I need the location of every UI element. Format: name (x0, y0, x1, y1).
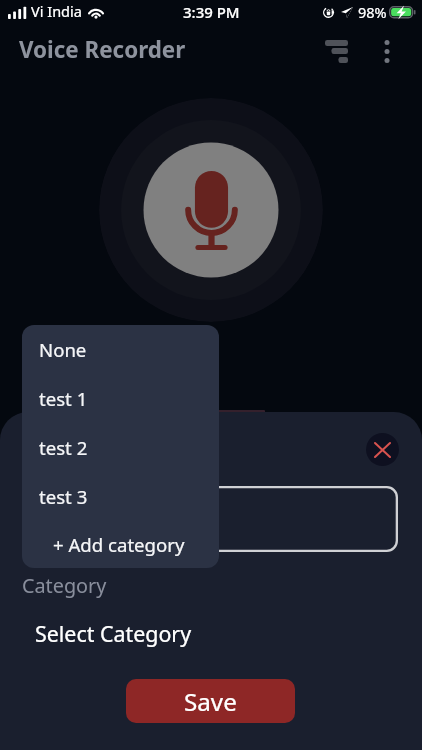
staticText: 98% (358, 2, 387, 22)
button[interactable]: Save (126, 679, 295, 723)
button[interactable]: None (22, 325, 219, 374)
button[interactable]: More options (368, 33, 405, 70)
button[interactable]: Select Category (0, 608, 422, 658)
staticText: + Add category (53, 532, 185, 557)
button[interactable]: test 2 (22, 423, 219, 472)
button[interactable]: Filter (316, 31, 357, 72)
staticText: Select Category (35, 619, 192, 648)
staticText: test 2 (39, 435, 88, 460)
button[interactable]: + Add category (22, 521, 219, 568)
button[interactable]: test 3 (22, 472, 219, 521)
staticText: Vi India (31, 1, 82, 21)
button[interactable]: Record (99, 98, 323, 322)
staticText: Category (22, 572, 107, 599)
button[interactable]: Close (366, 433, 399, 466)
staticText: 3:39 PM (183, 2, 240, 22)
staticText: Voice Recorder (19, 34, 186, 65)
staticText: test 1 (39, 386, 88, 411)
staticText: test 3 (39, 484, 88, 509)
button[interactable]: test 1 (22, 374, 219, 423)
staticText: None (39, 337, 87, 362)
staticText: Save (184, 685, 237, 718)
button[interactable] (24, 486, 398, 552)
